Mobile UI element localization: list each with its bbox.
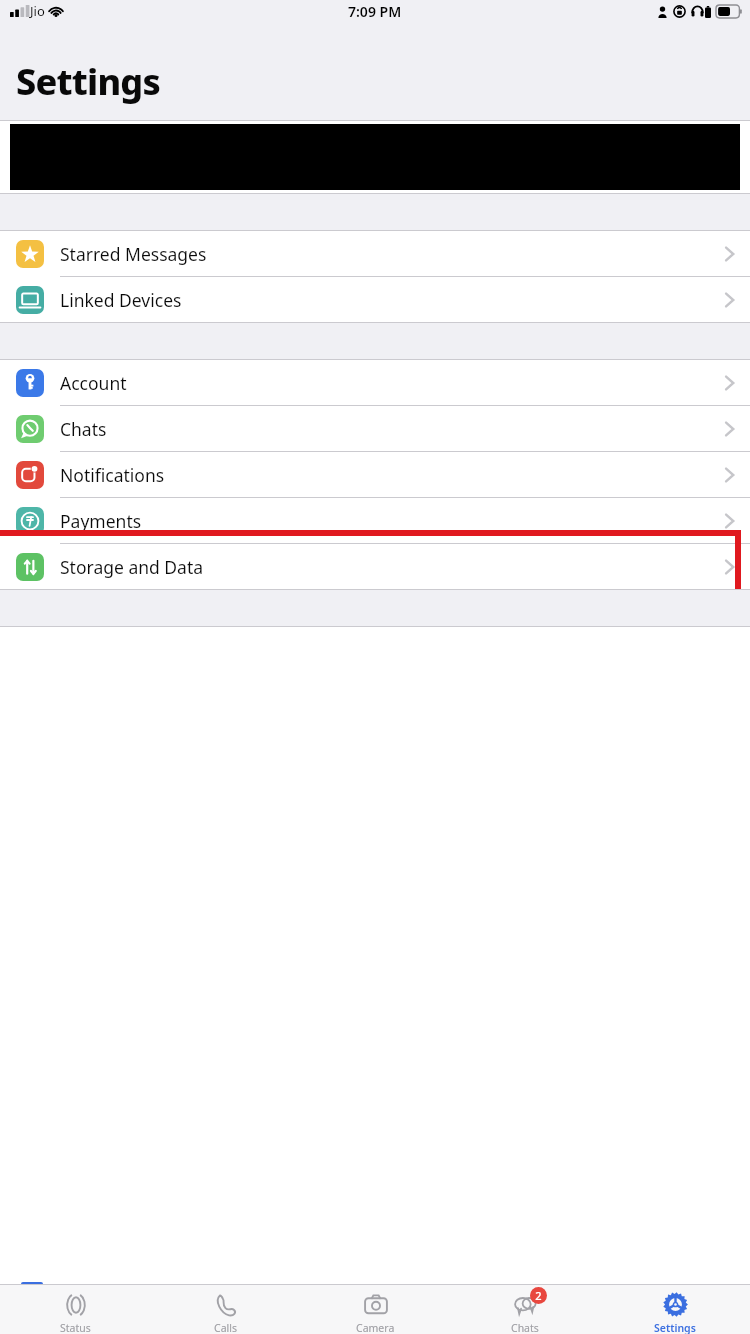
button[interactable]: Starred Messages [0, 231, 750, 277]
staticText: Linked Devices [60, 288, 182, 312]
button[interactable]: Status [0, 1285, 150, 1334]
staticText: Camera [356, 1321, 395, 1334]
staticText: Settings [16, 57, 161, 106]
staticText: Settings [654, 1321, 696, 1334]
staticText: Chats [511, 1321, 539, 1334]
staticText: Payments [60, 509, 142, 533]
staticText: Starred Messages [60, 242, 207, 266]
button[interactable]: Camera [300, 1285, 450, 1334]
button[interactable]: Chats [0, 406, 750, 452]
button[interactable]: Payments [0, 498, 750, 544]
button[interactable]: Notifications [0, 452, 750, 498]
button[interactable] [0, 121, 750, 193]
button[interactable]: Calls [150, 1285, 300, 1334]
staticText: Notifications [60, 463, 165, 487]
staticText: 7:09 PM [348, 2, 402, 21]
staticText: Jio [30, 2, 45, 20]
button[interactable]: Linked Devices [0, 277, 750, 322]
button[interactable]: Settings [600, 1285, 750, 1334]
staticText: Chats [60, 417, 107, 441]
staticText: Account [60, 371, 127, 395]
staticText: Calls [214, 1321, 237, 1334]
staticText: Storage and Data [60, 555, 204, 579]
button[interactable]: 2 [450, 1285, 600, 1334]
button[interactable]: Storage and Data [0, 544, 750, 589]
staticText: Status [60, 1321, 91, 1334]
button[interactable]: Account [0, 360, 750, 406]
staticText: 2 [535, 1288, 542, 1303]
